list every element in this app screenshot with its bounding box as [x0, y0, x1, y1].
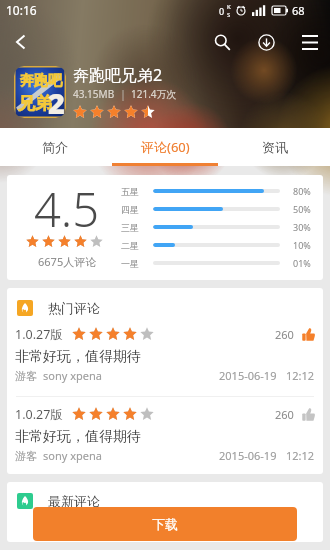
staticText: 非常好玩，值得期待 [15, 428, 141, 446]
staticText: 12:12 [286, 448, 315, 463]
staticText: | [115, 87, 131, 101]
staticText: 121.4万次 [131, 87, 177, 101]
staticText: 4.5 [34, 177, 100, 241]
staticText: 最新评论 [48, 493, 100, 509]
staticText: 0 [219, 5, 225, 17]
staticText: 260 [275, 327, 294, 342]
staticText: 二星 [121, 240, 139, 251]
staticText: 2015-06-19 [219, 448, 277, 463]
staticText: 简介 [42, 139, 68, 155]
staticText: 游客 [15, 449, 37, 463]
staticText: 游客 [15, 369, 37, 383]
button[interactable]: 资讯 [220, 128, 330, 166]
staticText: 五星 [121, 186, 139, 197]
button[interactable]: 评论(60) [110, 128, 220, 166]
staticText: 三星 [121, 222, 139, 233]
staticText: 非常好玩，值得期待 [15, 348, 141, 366]
staticText: 热门评论 [48, 300, 100, 316]
staticText: S [227, 11, 231, 19]
button[interactable]: 热门评论 [17, 300, 323, 316]
staticText: 一星 [121, 258, 139, 269]
staticText: 12:12 [286, 368, 315, 383]
button[interactable]: Like [302, 328, 315, 341]
staticText: 50% [293, 203, 311, 215]
staticText: 80% [293, 185, 311, 197]
staticText: 10% [293, 239, 311, 251]
button[interactable]: 最新评论 [17, 493, 323, 509]
staticText: 1.0.27版 [15, 326, 63, 343]
staticText: sony xpena [43, 368, 102, 383]
staticText: 奔跑吧 [20, 72, 62, 90]
button[interactable]: Search [206, 26, 238, 58]
staticText: 260 [275, 407, 294, 422]
staticText: 6675人评论 [38, 254, 97, 269]
staticText: 10:16 [6, 2, 37, 18]
staticText: 奔跑吧兄弟2 [73, 64, 163, 86]
staticText: 评论(60) [141, 138, 190, 156]
button[interactable]: Like [302, 408, 315, 421]
staticText: 1.0.27版 [15, 406, 63, 423]
staticText: 四星 [121, 204, 139, 215]
button[interactable]: App icon [14, 66, 66, 118]
button[interactable]: Menu [294, 26, 326, 58]
button[interactable]: 简介 [0, 128, 110, 166]
button[interactable]: Downloads [250, 26, 282, 58]
button[interactable]: Back [4, 26, 36, 58]
staticText: 2015-06-19 [219, 368, 277, 383]
staticText: 01% [293, 257, 311, 269]
staticText: 2 [48, 83, 65, 118]
staticText: 兄弟 [18, 93, 52, 114]
staticText: 68 [292, 3, 305, 18]
staticText: 资讯 [262, 139, 288, 155]
staticText: 30% [293, 221, 311, 233]
staticText: 43.15MB [73, 87, 115, 101]
staticText: 下载 [152, 516, 178, 532]
button[interactable]: 下载 [33, 507, 297, 541]
staticText: sony xpena [43, 448, 102, 463]
staticText: K [227, 3, 231, 11]
